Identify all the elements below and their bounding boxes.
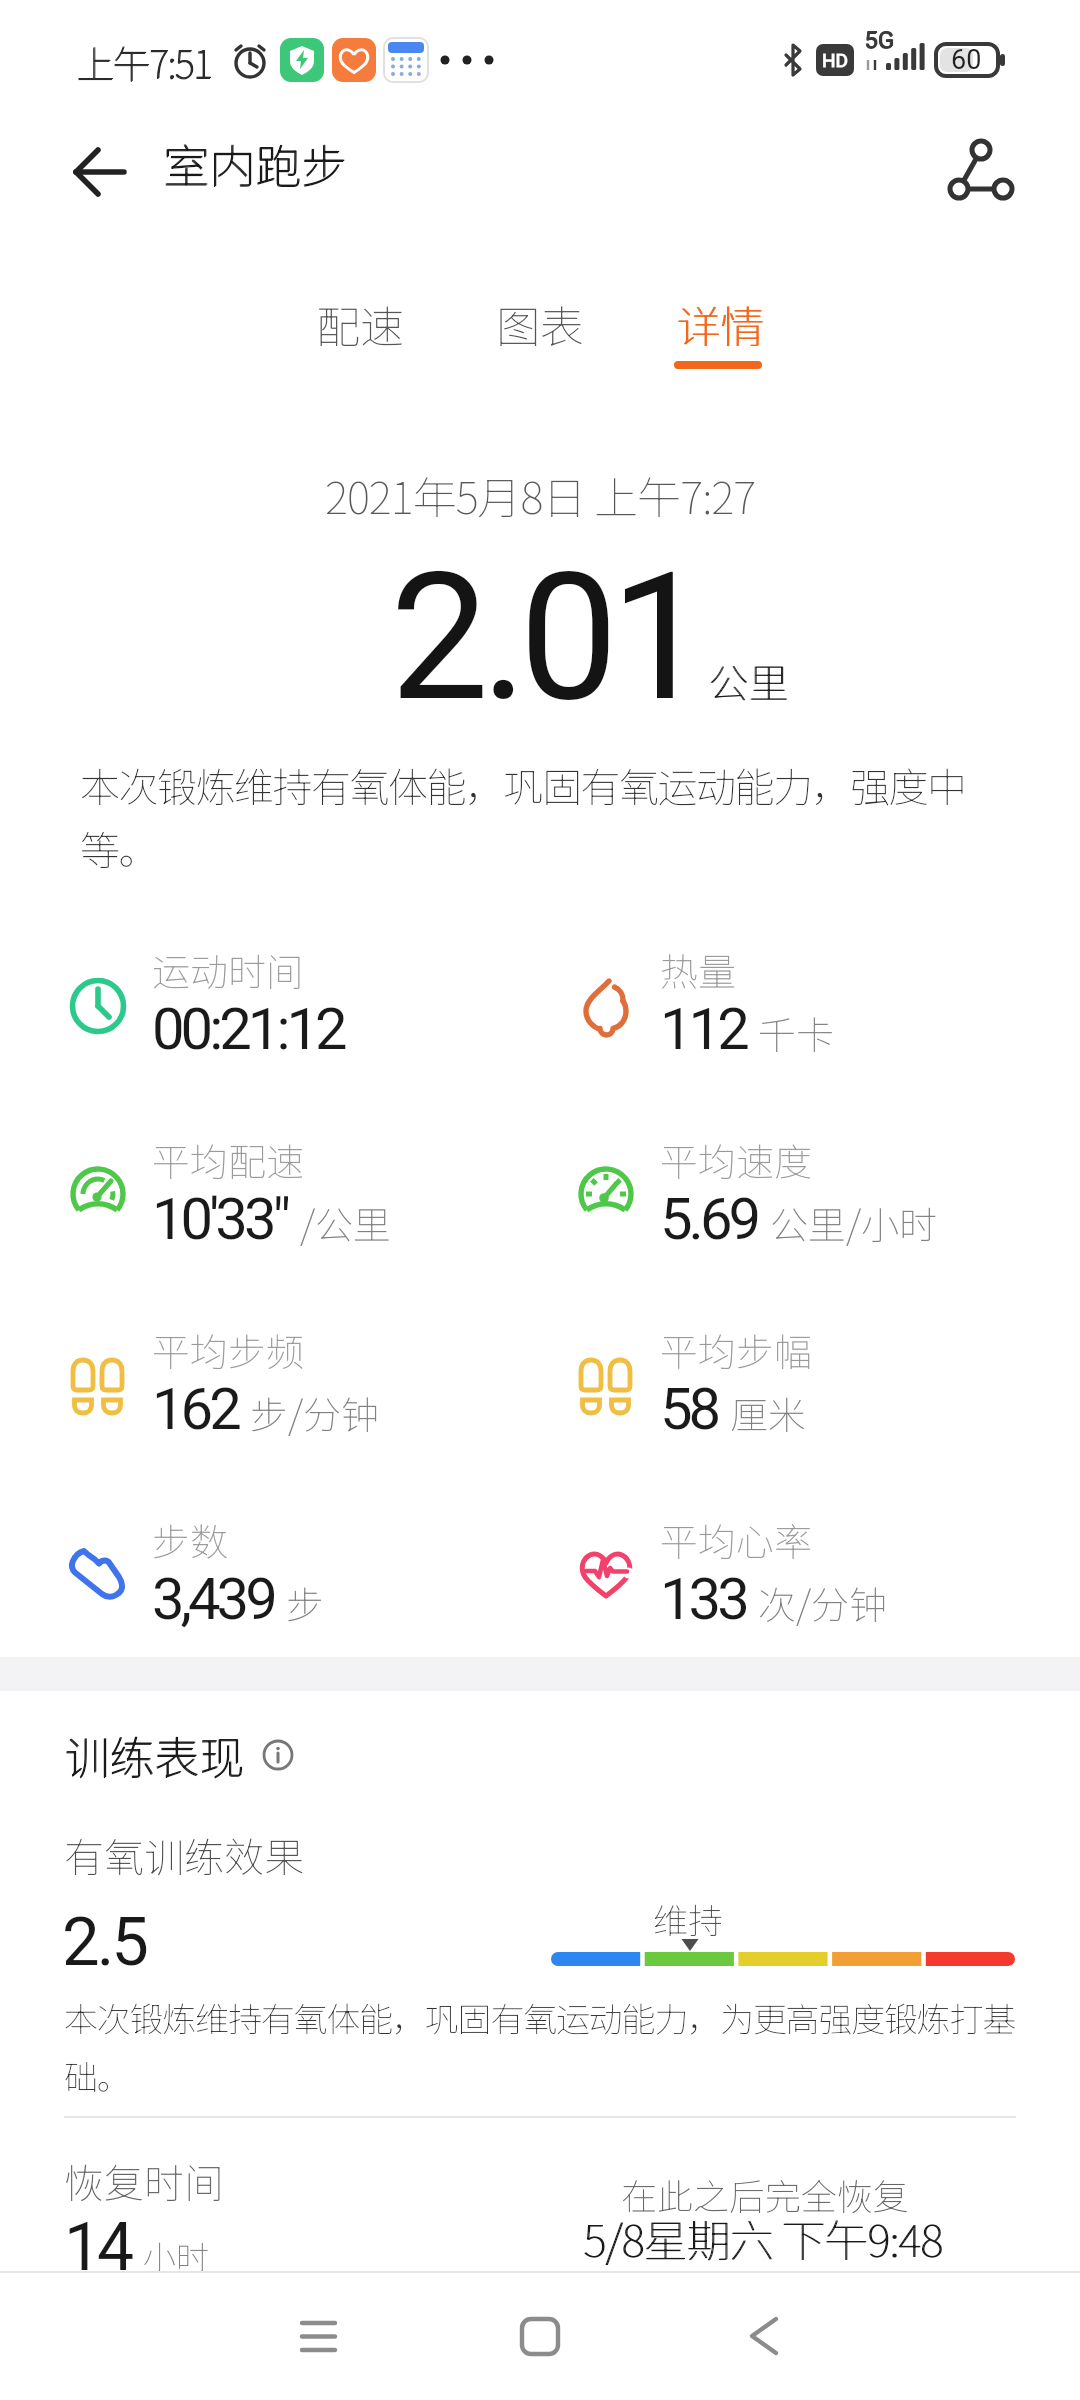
button[interactable] (930, 120, 1030, 220)
staticText: 室内跑步 (163, 130, 347, 197)
button[interactable]: 图表 (450, 292, 630, 356)
staticText: 00:21:12 (152, 995, 344, 1063)
staticText: 训练表现 (65, 1722, 246, 1787)
staticText: 60 (951, 44, 982, 76)
staticText: 步/分钟 (250, 1385, 380, 1440)
staticText: 上午7:51 (76, 34, 212, 89)
staticText: 公里 (709, 652, 789, 710)
staticText: 5/8星期六 下午9:48 (584, 2206, 943, 2270)
staticText: 热量 (660, 942, 737, 997)
staticText: 详情 (676, 292, 764, 356)
staticText: 厘米 (730, 1385, 807, 1440)
staticText: 14 (64, 2209, 131, 2286)
staticText: 2.01 (390, 535, 702, 741)
staticText: 室内跑步 (163, 131, 347, 198)
staticText: 5G (864, 26, 894, 54)
staticText: HD (822, 49, 849, 71)
button[interactable]: 详情 (630, 292, 810, 356)
staticText: 次/分钟 (758, 1575, 888, 1630)
staticText: 在此之后完全恢复 (621, 2168, 910, 2220)
staticText: 本次锻炼维持有氧体能，巩固有氧运动能力，为更高强度锻炼打基础。 (64, 1993, 1016, 2099)
staticText: 运动时间 (152, 942, 305, 997)
staticText: 5.69 (660, 1185, 758, 1253)
staticText: 平均步频 (152, 1322, 305, 1377)
staticText: 训练表现 (64, 1723, 245, 1788)
staticText: 上午7:51 (76, 35, 212, 90)
staticText: 112 (660, 995, 746, 1063)
staticText: 公里/小时 (770, 1195, 938, 1250)
staticText: 室内跑步 (164, 130, 348, 197)
staticText: 小时 (143, 2232, 209, 2280)
staticText: 步数 (152, 1512, 229, 1567)
staticText: 平均速度 (660, 1132, 813, 1187)
staticText: 3,439 (152, 1565, 274, 1633)
staticText: 配速 (316, 292, 404, 356)
button[interactable] (60, 132, 140, 212)
staticText: 2021年5月8日 上午7:27 (325, 463, 756, 527)
staticText: 5G (865, 26, 895, 54)
staticText: 恢复时间 (64, 2152, 224, 2210)
staticText: 58 (660, 1375, 718, 1443)
staticText: 平均配速 (152, 1132, 305, 1187)
staticText: 详情 (677, 292, 765, 356)
staticText: 步 (286, 1575, 325, 1630)
staticText: 平均心率 (660, 1512, 813, 1567)
staticText: 133 (660, 1565, 746, 1633)
staticText: 5/8星期六 下午9:48 (583, 2206, 942, 2270)
staticText: 本次锻炼维持有氧体能，巩固有氧运动能力，强度中等。 (80, 756, 1020, 876)
staticText: 上午7:51 (77, 34, 213, 89)
staticText: 公里 (708, 652, 788, 710)
staticText: 10'33" (152, 1185, 288, 1253)
staticText: 平均步幅 (660, 1322, 813, 1377)
button[interactable] (492, 2296, 588, 2376)
staticText: 162 (152, 1375, 238, 1443)
staticText: 2.5 (62, 1903, 146, 1982)
staticText: 图表 (496, 292, 584, 356)
staticText: 训练表现 (64, 1722, 245, 1787)
staticText: /公里 (300, 1195, 392, 1250)
staticText: 千卡 (758, 1005, 835, 1060)
staticText: 有氧训练效果 (64, 1826, 304, 1884)
staticText: 5G (864, 27, 894, 55)
staticText: 维持 (653, 1893, 724, 1944)
button[interactable]: 配速 (270, 292, 450, 356)
button[interactable] (716, 2296, 812, 2376)
button[interactable] (270, 2296, 366, 2376)
